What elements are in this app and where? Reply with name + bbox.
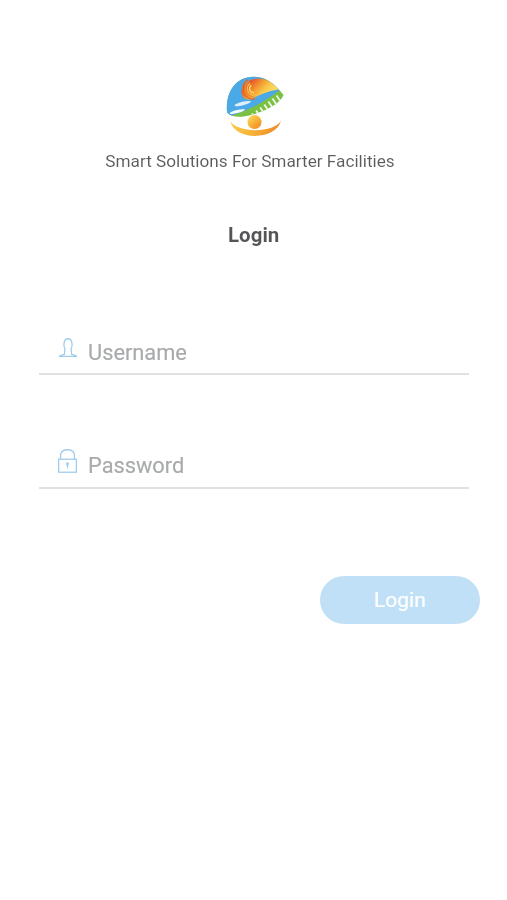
- button[interactable]: Login: [320, 576, 480, 624]
- staticText: Login: [374, 588, 426, 613]
- button[interactable]: Password: [39, 437, 469, 490]
- staticText: Login: [228, 223, 280, 247]
- button[interactable]: Username: [39, 324, 469, 376]
- other: Password: [58, 447, 77, 473]
- other: Company logo: [222, 73, 290, 141]
- staticText: Password: [88, 453, 185, 479]
- staticText: Username: [88, 340, 187, 366]
- staticText: Smart Solutions For Smarter Facilities: [105, 151, 395, 171]
- other: Username: [59, 338, 77, 357]
